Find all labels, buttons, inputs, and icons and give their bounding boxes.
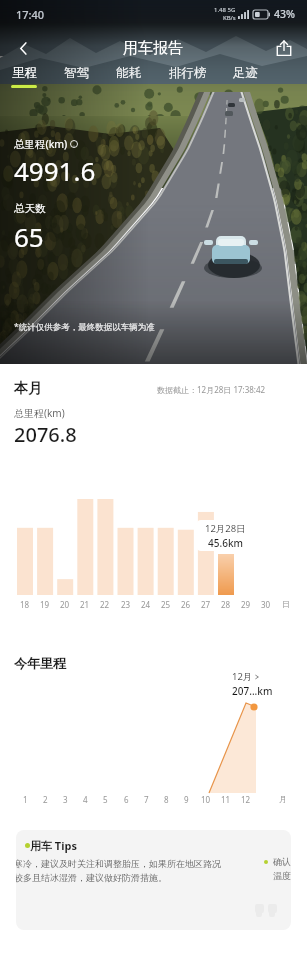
button[interactable]: 排行榜 [169,65,207,85]
button[interactable]: 用车 Tips [16,830,291,930]
staticText: 20 [60,599,70,610]
staticText: 23 [121,599,131,610]
button[interactable]: Share [267,31,301,65]
staticText: 月 [279,794,287,804]
staticText: 里程 [12,65,37,81]
staticText: *统计仅供参考，最终数据以车辆为准 [14,321,155,333]
button[interactable]: 足迹 [233,65,258,85]
staticText: 2076.8 [14,421,77,448]
staticText: 2 [43,794,48,805]
staticText: KB/s [223,14,236,22]
staticText: 4 [83,794,88,805]
staticText: 27 [201,599,211,610]
button[interactable]: 能耗 [116,65,141,85]
staticText: 21 [80,599,90,610]
staticText: 12月 [232,670,253,683]
staticText: 日 [282,599,290,609]
staticText: 43% [274,7,295,21]
staticText: 排行榜 [169,65,207,81]
staticText: 总里程(km) [14,406,65,420]
staticText: 本月 [14,380,42,398]
staticText: 足迹 [233,65,258,81]
staticText: 确认 温度 [273,856,291,882]
staticText: 用车报告 [123,39,183,58]
staticText: 65 [14,219,44,254]
staticText: 25 [161,599,171,610]
staticText: 智驾 [64,65,89,81]
staticText: 4991.6 [14,153,96,188]
staticText: 1.48 5G [214,6,236,14]
staticText: 5 [103,794,108,805]
staticText: 9 [184,794,189,805]
staticText: 207...km [232,684,273,698]
staticText: 能耗 [116,65,141,81]
staticText: 30 [261,599,271,610]
staticText: 6 [124,794,129,805]
staticText: 17:40 [16,7,45,22]
button[interactable]: 里程 [11,65,37,88]
staticText: 1 [23,794,28,805]
staticText: 45.6km [208,536,243,550]
staticText: 总天数 [14,202,46,215]
staticText: 冬季寒冷，建议及时关注和调整胎压，如果所在地区路况 积雪较多且结冰湿滑，建议做好… [16,858,221,884]
staticText: 总里程(km) [14,137,68,151]
staticText: 11 [221,794,231,805]
staticText: 26 [181,599,191,610]
button[interactable]: 12月28日 [197,520,253,551]
staticText: 用车 Tips [30,838,77,853]
staticText: 19 [40,599,50,610]
staticText: 数据截止：12月28日 17:38:42 [157,384,266,395]
staticText: 7 [144,794,149,805]
staticText: 18 [20,599,30,610]
staticText: 8 [164,794,169,805]
staticText: 22 [100,599,110,610]
staticText: 28 [221,599,231,610]
staticText: 10 [201,794,211,805]
staticText: 24 [141,599,151,610]
staticText: 12月28日 [205,522,246,535]
staticText: 3 [63,794,68,805]
staticText: 今年里程 [14,655,66,671]
staticText: 29 [241,599,251,610]
button[interactable]: 12月 [231,668,274,700]
button[interactable]: 智驾 [64,65,89,85]
staticText: 12 [241,794,251,805]
button[interactable]: Back [6,31,40,65]
